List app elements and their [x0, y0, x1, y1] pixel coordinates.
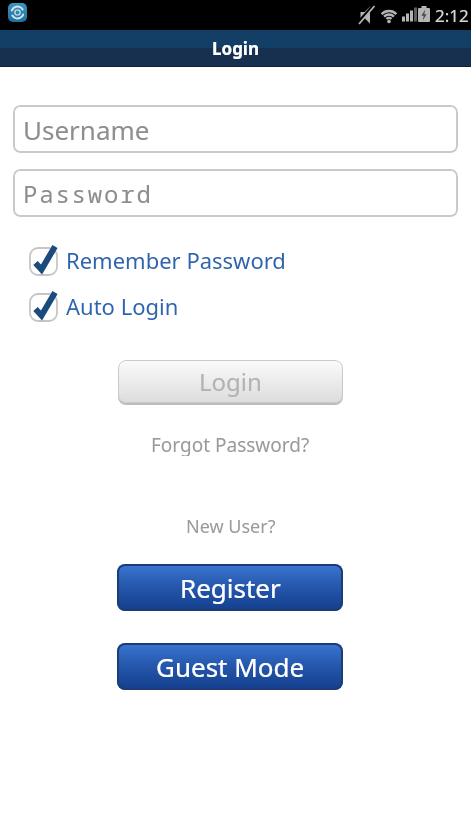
staticText: Auto Login	[66, 291, 179, 321]
staticText: Remember Password	[66, 245, 286, 275]
staticText: New User?	[186, 514, 276, 538]
staticText: Forgot Password?	[151, 432, 310, 456]
staticText: Register	[180, 570, 281, 605]
staticText: 2:12	[435, 4, 469, 27]
staticText: Login	[212, 37, 260, 60]
staticText: Password	[23, 177, 153, 210]
staticText: Login	[199, 365, 262, 398]
staticText: Username	[23, 112, 150, 147]
staticText: Guest Mode	[156, 649, 305, 684]
